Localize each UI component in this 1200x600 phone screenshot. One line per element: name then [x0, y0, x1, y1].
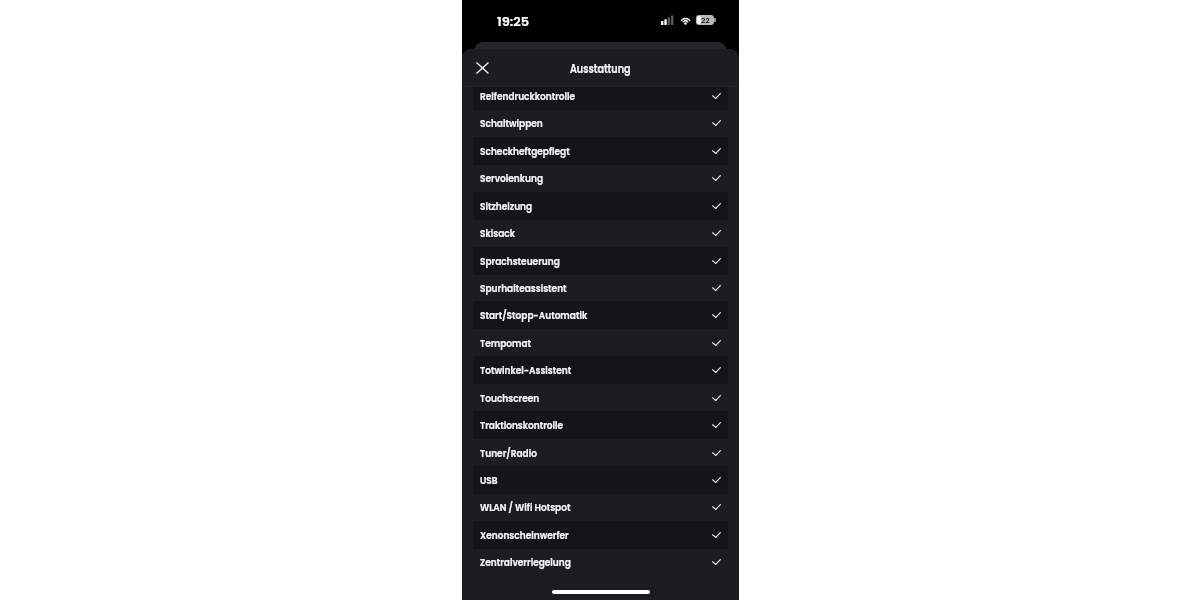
button[interactable]: Traktionskontrolle: [462, 411, 739, 439]
button[interactable]: USB: [462, 466, 739, 494]
staticText: 19:25: [497, 12, 530, 30]
button[interactable]: Skisack: [462, 219, 739, 247]
button[interactable]: Tempomat: [462, 329, 739, 357]
button[interactable]: Tuner/Radio: [462, 439, 739, 467]
button[interactable]: Touchscreen: [462, 384, 739, 412]
staticText: Schaltwippen: [480, 116, 543, 131]
button[interactable]: Start/Stopp-Automatik: [462, 301, 739, 329]
staticText: Touchscreen: [480, 391, 540, 406]
staticText: 22: [701, 15, 710, 25]
staticText: Start/Stopp-Automatik: [480, 308, 588, 323]
button[interactable]: Servolenkung: [462, 164, 739, 192]
staticText: WLAN / Wifi Hotspot: [480, 500, 571, 515]
button[interactable]: WLAN / Wifi Hotspot: [462, 493, 739, 521]
staticText: USB: [480, 473, 498, 488]
staticText: Xenonscheinwerfer: [480, 528, 569, 543]
staticText: Sprachsteuerung: [480, 254, 560, 269]
button[interactable]: Spurhalteassistent: [462, 274, 739, 302]
button[interactable]: Xenonscheinwerfer: [462, 521, 739, 549]
staticText: Zentralverriegelung: [480, 555, 571, 570]
staticText: Skisack: [480, 226, 515, 241]
staticText: Sitzheizung: [480, 199, 533, 214]
button[interactable]: Schaltwippen: [462, 109, 739, 137]
staticText: Scheckheftgepflegt: [480, 144, 570, 159]
button[interactable]: Sitzheizung: [462, 192, 739, 220]
staticText: Servolenkung: [480, 171, 544, 186]
button[interactable]: Totwinkel-Assistent: [462, 356, 739, 384]
button[interactable]: Close: [470, 56, 494, 80]
staticText: Ausstattung: [570, 61, 631, 76]
button[interactable]: Zentralverriegelung: [462, 548, 739, 576]
staticText: Tuner/Radio: [480, 446, 537, 461]
staticText: Totwinkel-Assistent: [480, 363, 572, 378]
button[interactable]: Sprachsteuerung: [462, 247, 739, 275]
button[interactable]: Scheckheftgepflegt: [462, 137, 739, 165]
staticText: Reifendruckkontrolle: [480, 89, 576, 104]
button[interactable]: Reifendruckkontrolle: [462, 82, 739, 110]
staticText: Spurhalteassistent: [480, 281, 567, 296]
staticText: Traktionskontrolle: [480, 418, 564, 433]
staticText: Tempomat: [480, 336, 532, 351]
